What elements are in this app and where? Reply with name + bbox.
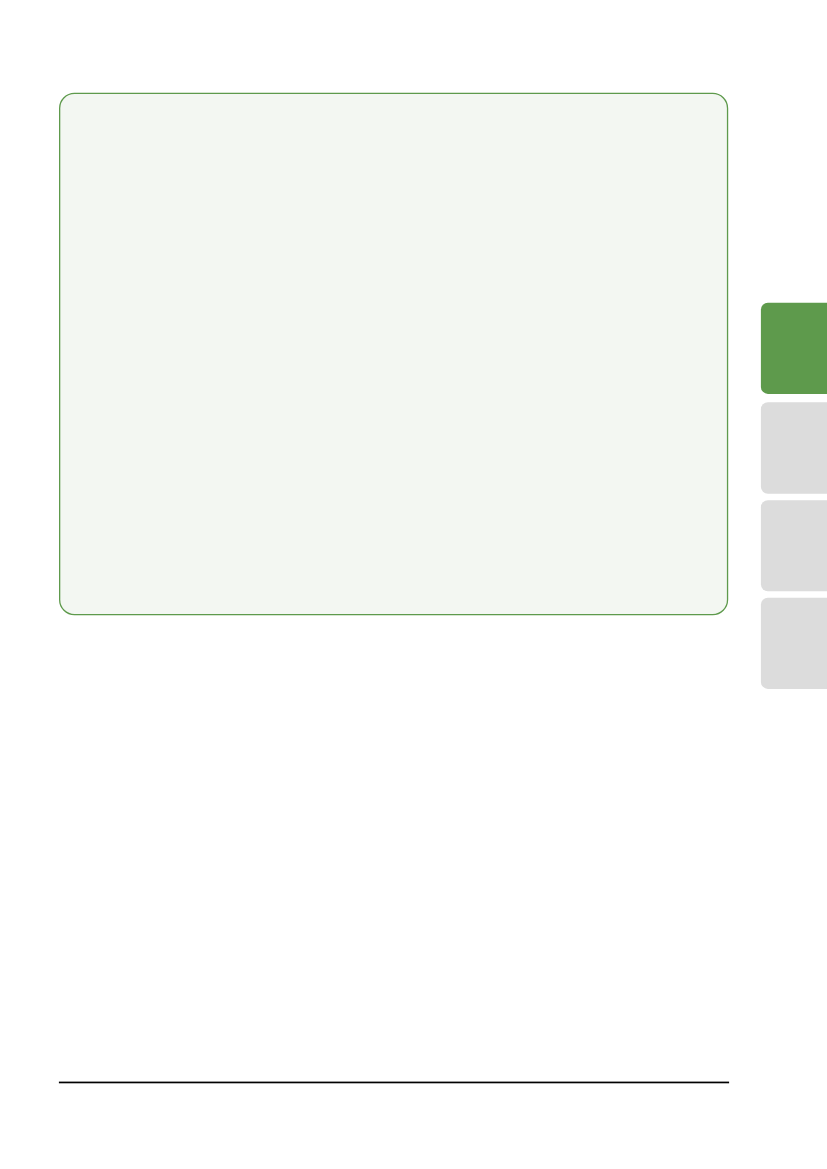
button[interactable]: Section tab 4	[760, 597, 827, 690]
button[interactable]: Section tab 2	[760, 401, 827, 495]
button[interactable]: Content panel	[58, 91, 731, 617]
button[interactable]: Selected section tab	[760, 302, 827, 395]
button[interactable]: Section tab 3	[760, 499, 827, 592]
